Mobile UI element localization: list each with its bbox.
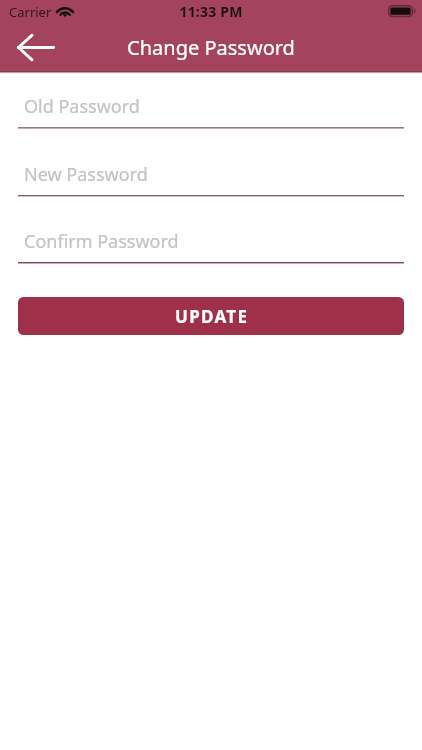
button[interactable]: New Password [18, 152, 404, 197]
staticText: New Password [24, 162, 148, 187]
staticText: Confirm Password [24, 229, 179, 254]
button[interactable]: Back [12, 24, 60, 71]
staticText: Change Password [0, 34, 422, 61]
staticText: Old Password [24, 94, 140, 119]
staticText: 11:33 PM [0, 2, 422, 21]
staticText: UPDATE [175, 305, 249, 328]
staticText: Carrier [9, 3, 52, 21]
button[interactable]: Confirm Password [18, 219, 404, 264]
button[interactable]: UPDATE [18, 297, 404, 335]
button[interactable]: Old Password [18, 84, 404, 129]
